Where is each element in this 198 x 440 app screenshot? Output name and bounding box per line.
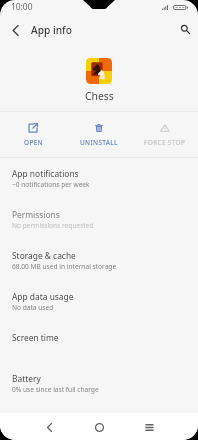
button[interactable]: OPEN: [0, 112, 66, 157]
staticText: OPEN: [24, 138, 43, 147]
staticText: Storage & cache: [12, 250, 76, 261]
staticText: FORCE STOP: [144, 138, 186, 147]
staticText: Screen time: [12, 332, 59, 343]
button[interactable]: Back: [36, 414, 62, 440]
button[interactable]: Storage & cache: [0, 240, 198, 281]
button[interactable]: Battery: [0, 363, 198, 408]
button[interactable]: Screen time: [0, 322, 198, 363]
staticText: No data used: [12, 303, 54, 312]
button[interactable]: Home: [86, 414, 112, 440]
staticText: 0% use since last full charge: [12, 385, 99, 394]
button[interactable]: Back: [3, 18, 27, 42]
staticText: No permissions requested: [12, 221, 94, 230]
button[interactable]: Search: [173, 17, 197, 41]
staticText: 68.00 MB used in internal storage: [12, 262, 117, 271]
staticText: Battery: [12, 373, 41, 384]
button[interactable]: App data usage: [0, 281, 198, 322]
button[interactable]: Recents: [136, 414, 162, 440]
button[interactable]: Permissions: [0, 199, 198, 240]
staticText: App notifications: [12, 168, 79, 179]
staticText: 10:00: [11, 1, 33, 12]
button[interactable]: App notifications: [0, 158, 198, 199]
staticText: Permissions: [12, 209, 60, 220]
staticText: App info: [31, 23, 72, 37]
button[interactable]: FORCE STOP: [132, 112, 198, 157]
staticText: Chess: [85, 89, 114, 103]
button[interactable]: UNINSTALL: [66, 112, 132, 157]
staticText: UNINSTALL: [80, 138, 118, 147]
staticText: App data usage: [12, 291, 74, 302]
staticText: ~0 notifications per week: [12, 180, 90, 189]
